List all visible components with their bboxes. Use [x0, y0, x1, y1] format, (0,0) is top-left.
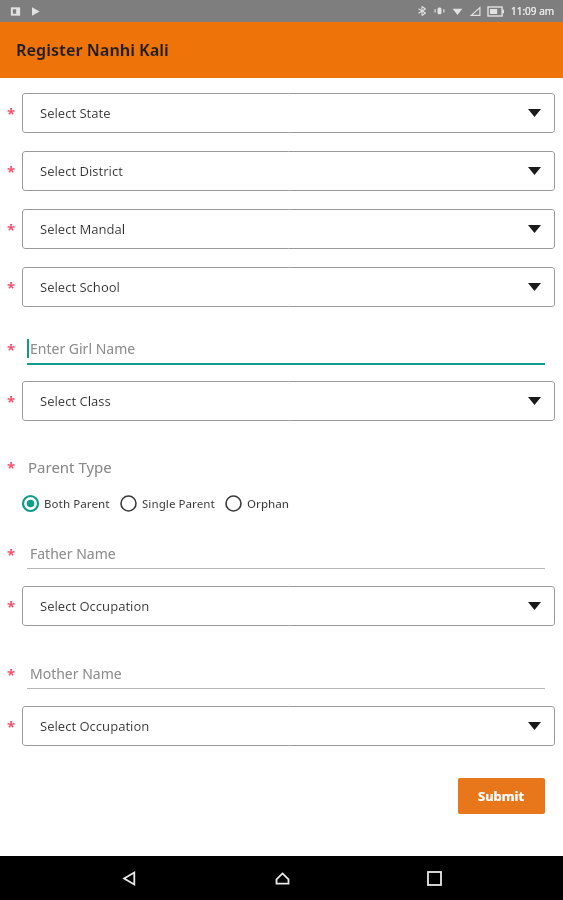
button[interactable]: Select Mandal [22, 209, 555, 249]
staticText: * [7, 391, 16, 411]
staticText: * [7, 103, 16, 123]
staticText: Select Occupation [40, 597, 150, 615]
staticText: * [7, 544, 16, 564]
staticText: * [7, 161, 16, 181]
staticText: Orphan [247, 496, 290, 512]
button[interactable]: Both Parent [22, 495, 110, 512]
staticText: Submit [478, 787, 525, 805]
staticText: 11:09 am [511, 4, 555, 18]
button[interactable]: Select State [22, 93, 555, 133]
button[interactable]: Single Parent [120, 495, 215, 512]
staticText: Mother Name [30, 664, 122, 683]
button[interactable]: Select School [22, 267, 555, 307]
staticText: * [7, 339, 16, 359]
staticText: * [7, 716, 16, 736]
button[interactable]: Recent apps [411, 856, 457, 900]
button[interactable]: Home [259, 856, 305, 900]
staticText: Select Class [40, 392, 111, 410]
button[interactable]: Enter Girl Name [22, 333, 545, 365]
staticText: * [7, 664, 16, 684]
staticText: Select State [40, 104, 111, 122]
staticText: * [7, 457, 16, 477]
button[interactable]: Mother Name [22, 658, 545, 689]
staticText: Select School [40, 278, 120, 296]
button[interactable]: Select Occupation [22, 706, 555, 746]
staticText: Select Occupation [40, 717, 150, 735]
staticText: Select District [40, 162, 123, 180]
staticText: * [7, 277, 16, 297]
staticText: Both Parent [44, 496, 110, 512]
staticText: Single Parent [142, 496, 215, 512]
staticText: Register Nanhi Kali [16, 39, 169, 61]
button[interactable]: Orphan [225, 495, 290, 512]
staticText: * [7, 596, 16, 616]
button[interactable]: Father Name [22, 538, 545, 569]
staticText: Select Mandal [40, 220, 126, 238]
button[interactable]: Select District [22, 151, 555, 191]
button[interactable]: Submit [458, 778, 545, 814]
staticText: Father Name [30, 544, 116, 563]
button[interactable]: Select Class [22, 381, 555, 421]
staticText: * [7, 219, 16, 239]
staticText: Parent Type [28, 457, 112, 477]
staticText: Enter Girl Name [30, 339, 136, 358]
button[interactable]: Back [106, 856, 152, 900]
button[interactable]: Select Occupation [22, 586, 555, 626]
